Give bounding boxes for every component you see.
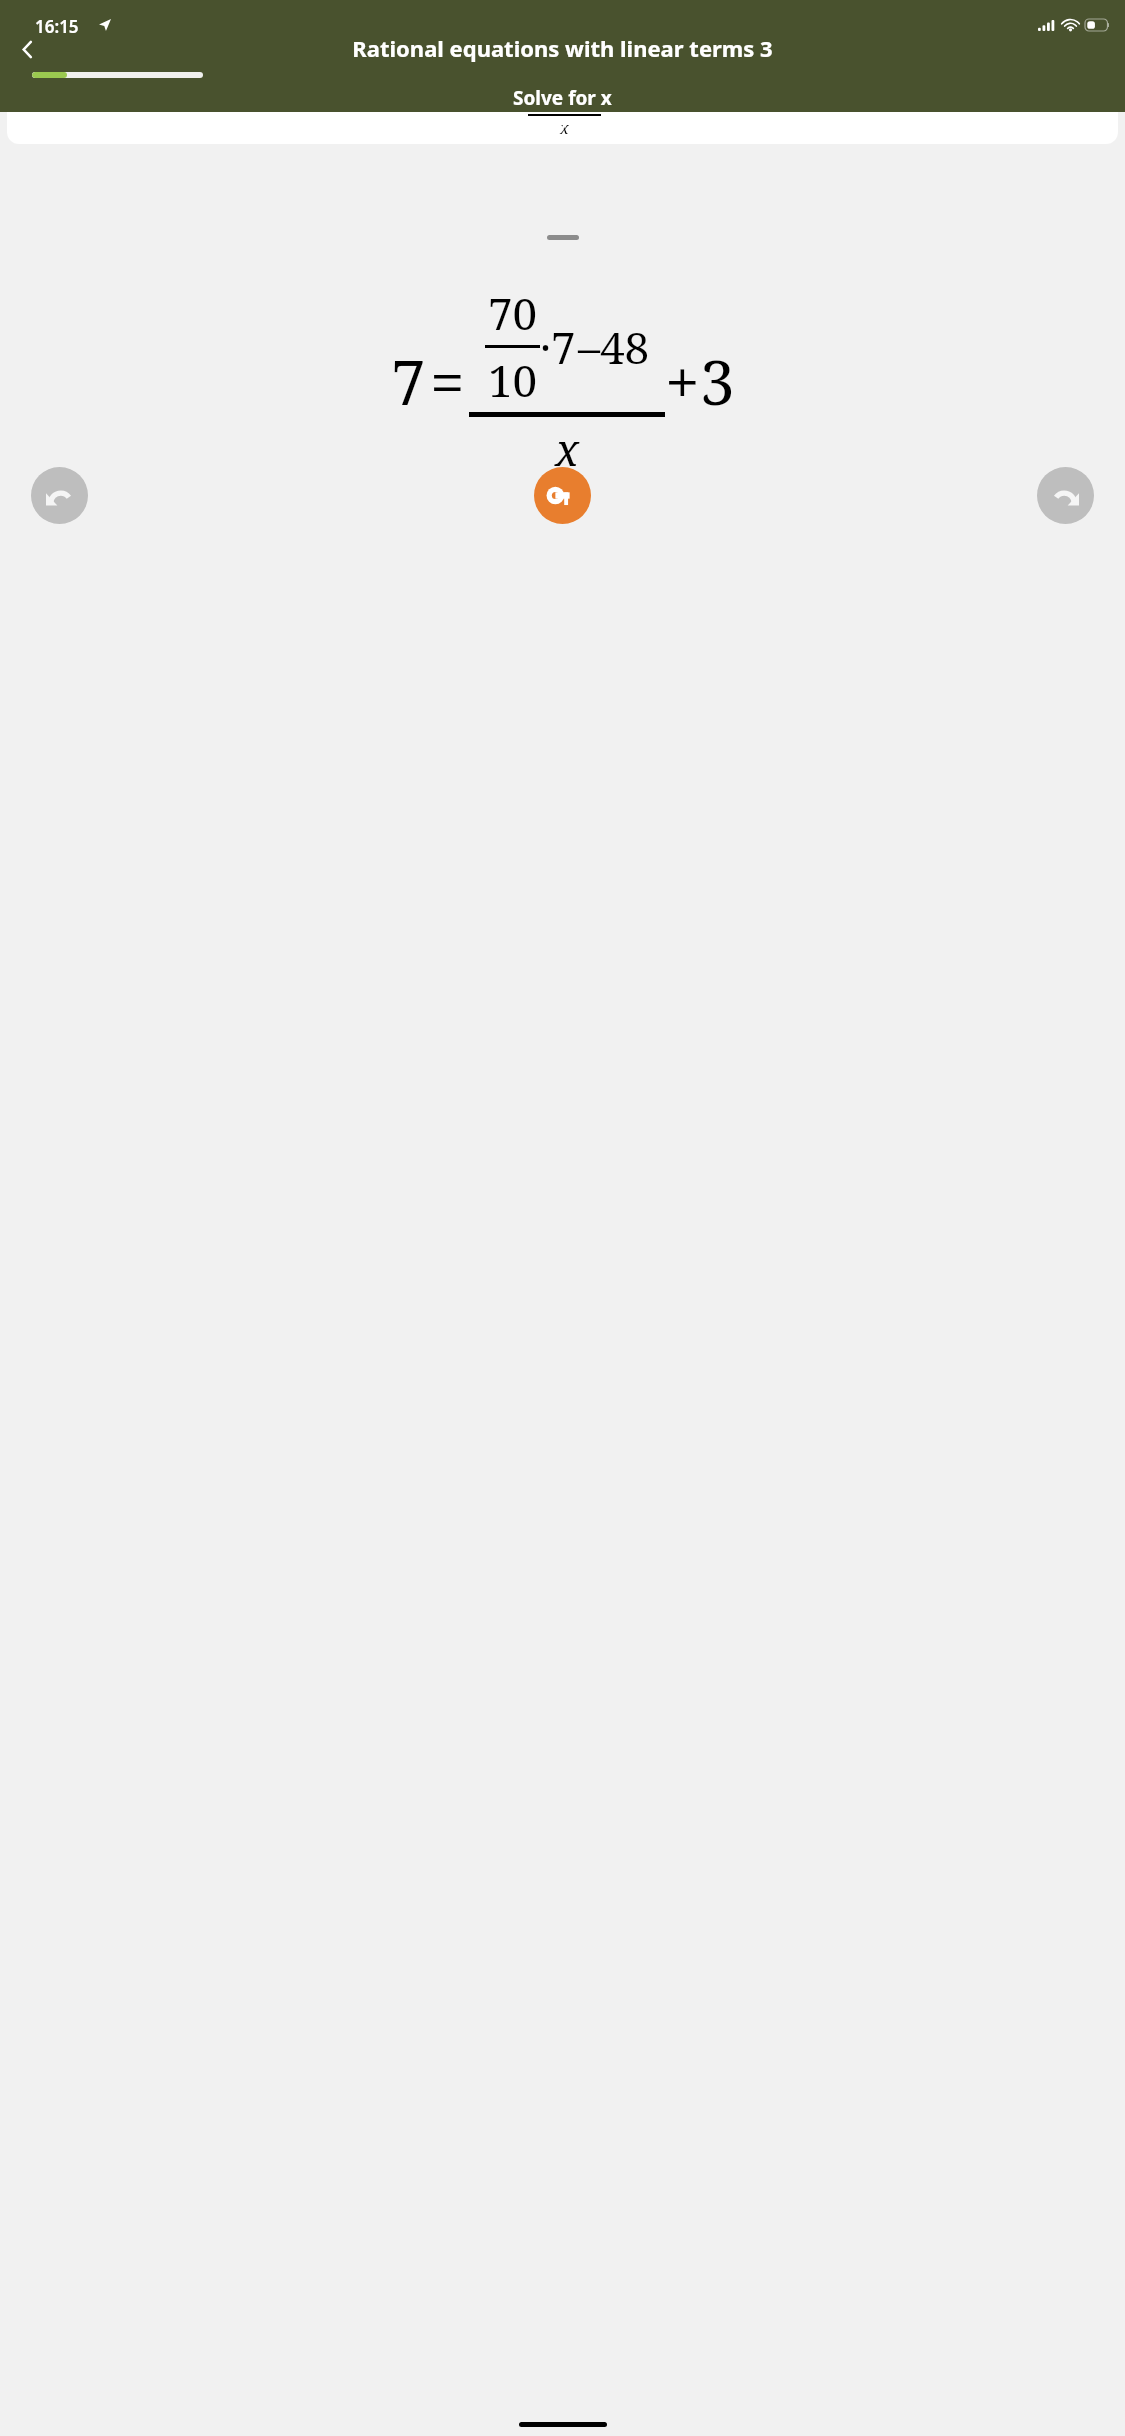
staticText: · (540, 317, 551, 377)
button[interactable]: Back (4, 26, 50, 72)
staticText: 48 (600, 317, 650, 377)
staticText: 48 (578, 79, 596, 101)
staticText: + (601, 87, 614, 118)
staticText: – (569, 79, 578, 101)
staticText: x (555, 419, 580, 479)
staticText: 70 (488, 283, 538, 343)
staticText: = (430, 339, 465, 423)
staticText: 10 (535, 91, 553, 113)
staticText: Rational equations with linear terms 3 (45, 33, 1080, 63)
staticText: Solve for x (513, 85, 612, 111)
staticText: 7 (559, 79, 568, 101)
staticText: 3 (700, 339, 735, 423)
staticText: + (665, 339, 700, 423)
button[interactable]: Resize panel (547, 235, 579, 240)
button[interactable]: 7 (7, 70, 1118, 144)
button[interactable]: Undo (31, 467, 88, 524)
staticText: 3 (614, 87, 627, 118)
button[interactable]: Redo (1037, 467, 1094, 524)
staticText: 7 (551, 317, 576, 377)
staticText: Step 0 of 10 (513, 111, 613, 136)
staticText: 16:15 (35, 15, 79, 38)
staticText: 7 (498, 87, 511, 118)
staticText: = (513, 87, 526, 118)
staticText: 10 (488, 350, 538, 410)
staticText: 7 (391, 339, 426, 423)
staticText: x (560, 117, 569, 139)
staticText: · (554, 79, 559, 101)
button[interactable]: Show answer (534, 467, 591, 524)
staticText: – (578, 317, 600, 377)
